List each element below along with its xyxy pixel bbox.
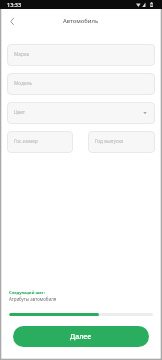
- staticText: Цвет: [14, 109, 26, 116]
- staticText: Гос.номер: [14, 138, 38, 145]
- button[interactable]: Модель: [7, 73, 155, 95]
- button[interactable]: Далее: [13, 326, 149, 347]
- staticText: Модель: [14, 80, 33, 87]
- staticText: Далее: [70, 332, 92, 342]
- button[interactable]: Марка: [7, 44, 155, 66]
- button[interactable]: Гос.номер: [7, 131, 73, 153]
- staticText: Атрибуты автомобиля: [9, 296, 57, 302]
- staticText: 13:33: [7, 1, 22, 8]
- staticText: Автомобиль: [63, 17, 99, 25]
- button[interactable]: Год выпуска: [88, 131, 155, 153]
- staticText: Год выпуска: [95, 138, 124, 145]
- button[interactable]: Цвет: [7, 102, 155, 124]
- staticText: Марка: [14, 51, 30, 58]
- button[interactable]: Back: [3, 13, 20, 30]
- staticText: Следующий шаг:: [9, 290, 45, 296]
